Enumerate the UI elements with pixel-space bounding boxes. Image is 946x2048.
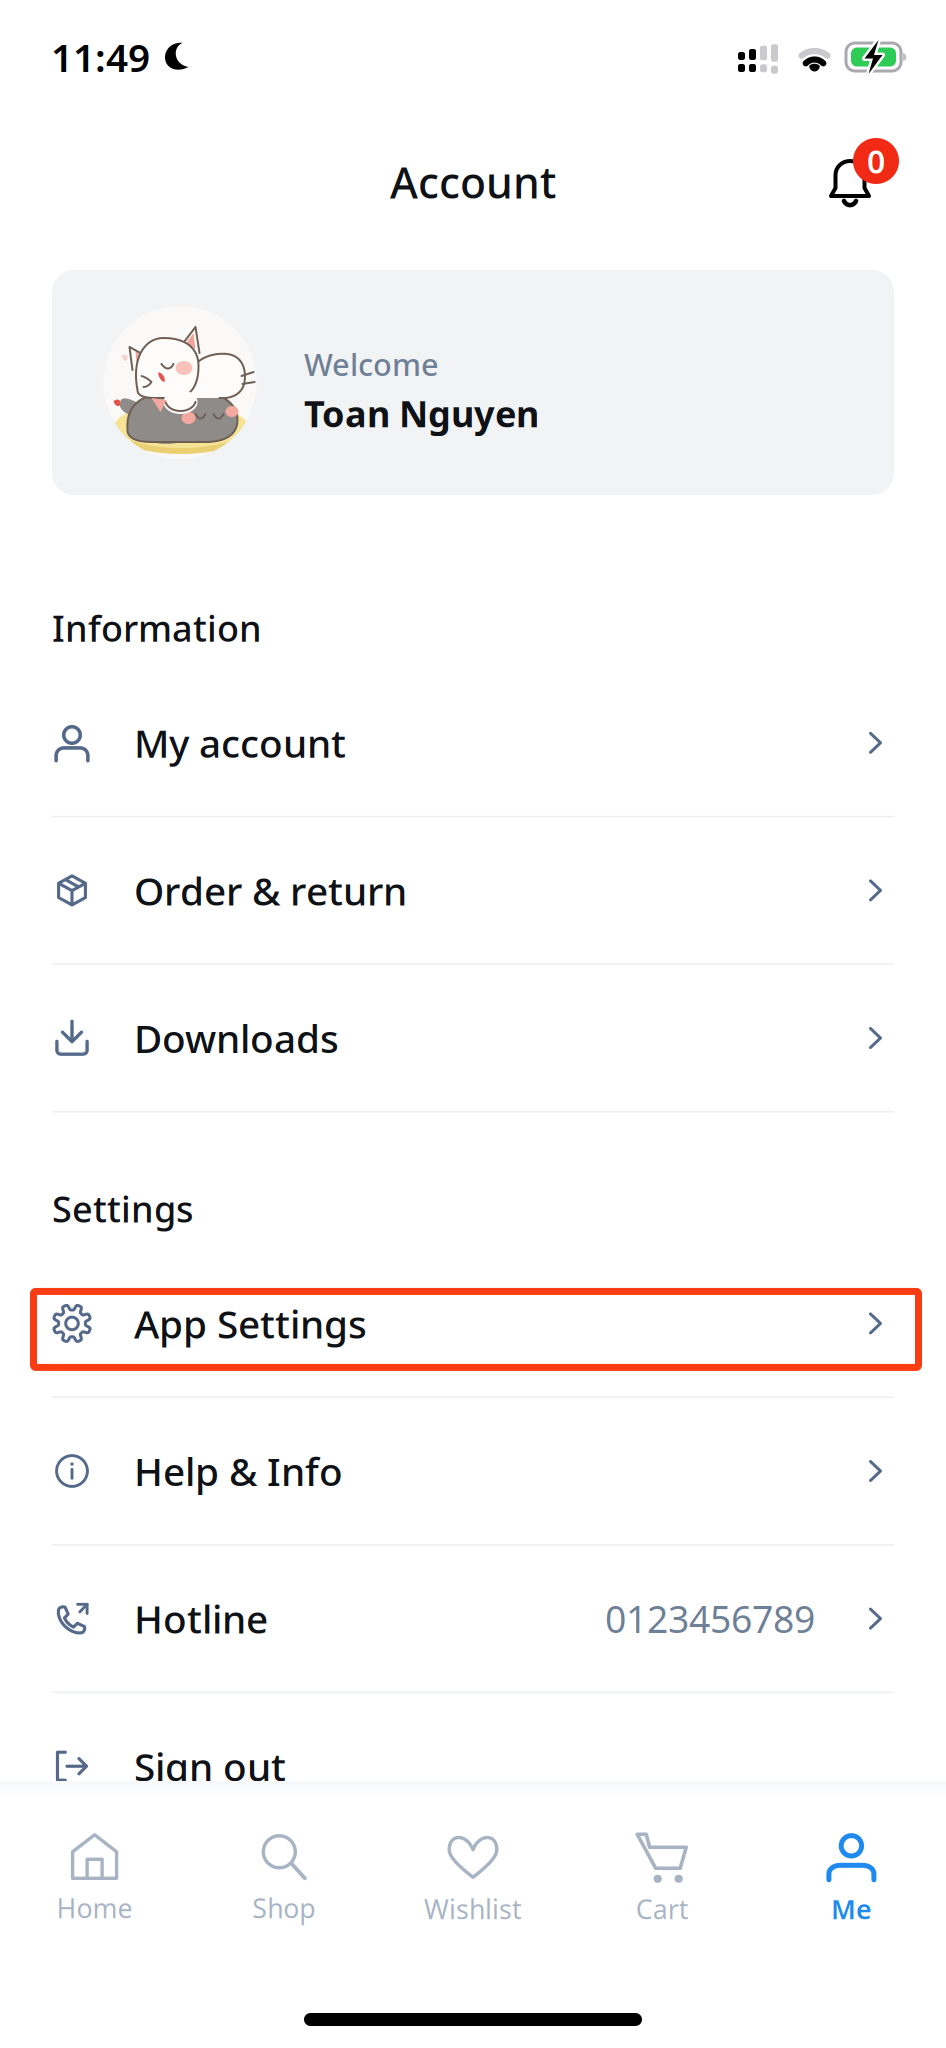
button[interactable]: Home [0, 1802, 189, 1932]
button[interactable]: Me [757, 1801, 946, 1933]
button[interactable]: Shop [189, 1802, 378, 1932]
staticText: 0123456789 [605, 1594, 815, 1643]
button[interactable]: Sign out [0, 1693, 946, 1839]
staticText: Home [57, 1890, 133, 1926]
button[interactable]: Notifications [827, 150, 923, 234]
staticText: Sign out [134, 1740, 286, 1792]
button[interactable]: App Settings [0, 1250, 946, 1396]
staticText: Me [831, 1891, 872, 1927]
staticText: 0 [867, 140, 885, 182]
staticText: Shop [252, 1890, 315, 1926]
staticText: Help & Info [134, 1445, 343, 1497]
staticText: Downloads [134, 1012, 339, 1064]
button[interactable]: Wishlist [378, 1801, 568, 1933]
button[interactable]: Order & return [0, 817, 946, 963]
button[interactable]: Cart [568, 1801, 757, 1933]
button[interactable]: Downloads [0, 965, 946, 1111]
button[interactable]: My account [0, 670, 946, 816]
staticText: Information [52, 604, 262, 652]
staticText: Account [390, 154, 556, 210]
staticText: Toan Nguyen [304, 389, 539, 437]
staticText: App Settings [134, 1298, 367, 1349]
staticText: 11:49 [51, 31, 150, 83]
staticText: Cart [636, 1891, 689, 1927]
staticText: Settings [52, 1185, 193, 1232]
staticText: Wishlist [424, 1891, 522, 1927]
button[interactable]: Help & Info [0, 1398, 946, 1544]
staticText: My account [134, 717, 346, 768]
staticText: Order & return [134, 865, 407, 916]
button[interactable]: Hotline [0, 1546, 946, 1692]
staticText: Hotline [134, 1593, 268, 1644]
staticText: Welcome [304, 344, 439, 384]
